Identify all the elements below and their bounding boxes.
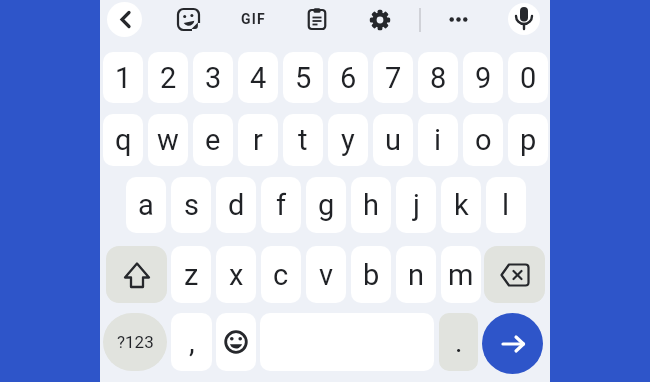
button[interactable]: ?123: [103, 313, 167, 371]
staticText: z: [184, 258, 199, 292]
button[interactable]: y: [328, 114, 368, 166]
staticText: u: [385, 123, 401, 157]
button[interactable]: 7: [373, 52, 413, 103]
button[interactable]: [303, 5, 331, 33]
staticText: m: [448, 258, 474, 292]
staticText: n: [408, 258, 425, 292]
button[interactable]: i: [418, 114, 458, 166]
staticText: x: [229, 258, 244, 292]
staticText: 6: [340, 61, 357, 95]
staticText: l: [502, 188, 510, 222]
button[interactable]: .: [439, 313, 478, 371]
staticText: d: [228, 188, 245, 222]
staticText: 2: [160, 61, 177, 95]
button[interactable]: 6: [328, 52, 368, 103]
button[interactable]: GIF: [238, 6, 268, 32]
button[interactable]: [484, 246, 545, 303]
button[interactable]: [216, 313, 256, 371]
staticText: 1: [115, 61, 132, 95]
staticText: f: [276, 188, 287, 222]
staticText: q: [115, 123, 132, 157]
button[interactable]: [106, 246, 167, 303]
button[interactable]: [107, 2, 142, 37]
button[interactable]: [482, 313, 543, 374]
staticText: k: [454, 188, 469, 222]
staticText: s: [184, 188, 199, 222]
staticText: 0: [520, 61, 537, 95]
staticText: h: [363, 188, 379, 222]
button[interactable]: 1: [103, 52, 143, 103]
button[interactable]: [508, 3, 540, 35]
button[interactable]: x: [216, 246, 256, 303]
button[interactable]: 0: [508, 52, 548, 103]
button[interactable]: d: [216, 177, 256, 233]
button[interactable]: u: [373, 114, 413, 166]
staticText: e: [205, 123, 221, 157]
staticText: c: [273, 258, 289, 292]
staticText: 4: [250, 61, 267, 95]
button[interactable]: s: [171, 177, 211, 233]
staticText: a: [138, 188, 154, 222]
button[interactable]: [366, 6, 394, 34]
button[interactable]: c: [261, 246, 301, 303]
button[interactable]: 9: [463, 52, 503, 103]
button[interactable]: f: [261, 177, 301, 233]
button[interactable]: j: [396, 177, 436, 233]
button[interactable]: n: [396, 246, 436, 303]
staticText: GIF: [241, 11, 266, 27]
staticText: 8: [430, 61, 447, 95]
button[interactable]: [445, 7, 472, 32]
button[interactable]: a: [126, 177, 166, 233]
button[interactable]: 4: [238, 52, 278, 103]
button[interactable]: q: [103, 114, 143, 166]
staticText: w: [157, 123, 179, 157]
staticText: g: [318, 188, 335, 222]
staticText: ,: [189, 325, 195, 359]
button[interactable]: ,: [171, 313, 212, 371]
staticText: b: [363, 258, 380, 292]
button[interactable]: z: [171, 246, 211, 303]
staticText: t: [298, 123, 308, 157]
button[interactable]: 5: [283, 52, 323, 103]
button[interactable]: k: [441, 177, 481, 233]
staticText: 9: [475, 61, 492, 95]
button[interactable]: [174, 5, 203, 34]
button[interactable]: p: [508, 114, 548, 166]
staticText: y: [341, 123, 355, 157]
staticText: p: [520, 123, 537, 157]
staticText: o: [475, 123, 492, 157]
button[interactable]: b: [351, 246, 391, 303]
staticText: i: [434, 123, 442, 157]
staticText: ?123: [117, 332, 154, 352]
staticText: r: [253, 123, 263, 157]
button[interactable]: e: [193, 114, 233, 166]
staticText: j: [413, 188, 420, 222]
button[interactable]: r: [238, 114, 278, 166]
button[interactable]: 8: [418, 52, 458, 103]
button[interactable]: g: [306, 177, 346, 233]
button[interactable]: m: [441, 246, 481, 303]
button[interactable]: l: [486, 177, 526, 233]
staticText: 7: [385, 61, 402, 95]
staticText: 5: [295, 61, 312, 95]
button[interactable]: v: [306, 246, 346, 303]
button[interactable]: 2: [148, 52, 188, 103]
staticText: 3: [205, 61, 222, 95]
button[interactable]: o: [463, 114, 503, 166]
button[interactable]: 3: [193, 52, 233, 103]
staticText: .: [455, 326, 463, 359]
staticText: v: [319, 258, 334, 292]
button[interactable]: t: [283, 114, 323, 166]
button[interactable]: w: [148, 114, 188, 166]
button[interactable]: h: [351, 177, 391, 233]
